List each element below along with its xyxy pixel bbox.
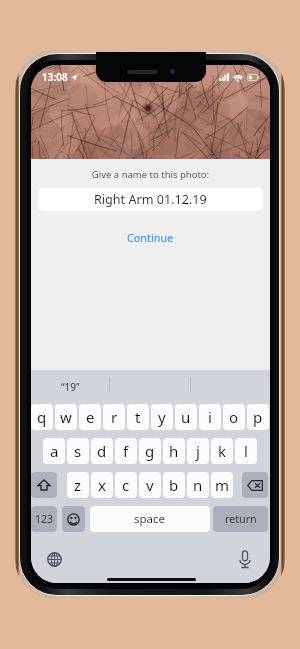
button[interactable]: Continue (31, 229, 270, 245)
button[interactable]: b (163, 472, 185, 498)
staticText: k (218, 441, 227, 461)
staticText: space (134, 511, 166, 527)
staticText: s (74, 441, 82, 461)
button[interactable]: l (235, 438, 257, 464)
staticText: u (181, 407, 191, 427)
staticText: Give a name to this photo: (31, 168, 270, 181)
button[interactable]: “19” (31, 370, 110, 404)
staticText: p (253, 407, 263, 427)
button[interactable]: z (67, 472, 89, 498)
button[interactable]: o (223, 404, 245, 430)
button[interactable]: n (187, 472, 209, 498)
staticText: g (145, 441, 155, 461)
staticText: return (225, 512, 257, 527)
button[interactable]: Shift (31, 472, 57, 498)
staticText: y (158, 407, 166, 427)
staticText: z (74, 475, 82, 495)
button[interactable]: q (31, 404, 53, 430)
button[interactable]: f (115, 438, 137, 464)
button[interactable]: c (115, 472, 137, 498)
staticText: c (122, 475, 130, 495)
button[interactable]: h (163, 438, 185, 464)
staticText: j (196, 441, 200, 461)
button[interactable]: d (91, 438, 113, 464)
staticText: 123 (35, 512, 54, 526)
button[interactable]: v (139, 472, 161, 498)
button[interactable]: Right Arm 01.12.19 (38, 188, 263, 211)
button[interactable]: r (103, 404, 125, 430)
button[interactable]: Backspace (242, 472, 268, 498)
button[interactable]: return (213, 506, 268, 532)
staticText: i (208, 407, 212, 427)
button[interactable]: Dictation (238, 550, 252, 569)
staticText: n (193, 475, 203, 495)
button[interactable]: j (187, 438, 209, 464)
button[interactable]: k (211, 438, 233, 464)
staticText: q (37, 407, 47, 427)
staticText: r (111, 407, 118, 427)
button[interactable]: g (139, 438, 161, 464)
button[interactable]: x (91, 472, 113, 498)
staticText: e (86, 407, 95, 427)
staticText: h (169, 441, 179, 461)
staticText: v (146, 475, 154, 495)
staticText: o (229, 407, 239, 427)
button[interactable]: m (211, 472, 233, 498)
staticText: d (97, 441, 107, 461)
button[interactable]: w (55, 404, 77, 430)
staticText: x (98, 475, 106, 495)
staticText: Continue (127, 230, 174, 245)
staticText: w (60, 407, 72, 427)
staticText: l (244, 441, 248, 461)
button[interactable]: e (79, 404, 101, 430)
staticText: 13:08 (42, 70, 68, 84)
button[interactable]: a (43, 438, 65, 464)
staticText: f (123, 441, 129, 461)
staticText: Right Arm 01.12.19 (94, 191, 207, 208)
staticText: b (169, 475, 179, 495)
button[interactable]: i (199, 404, 221, 430)
button[interactable]: space (90, 506, 210, 532)
button[interactable]: Emoji (62, 506, 85, 532)
button[interactable]: u (175, 404, 197, 430)
staticText: m (215, 475, 230, 495)
staticText: t (135, 407, 141, 427)
button[interactable]: 123 (31, 506, 57, 532)
button[interactable]: y (151, 404, 173, 430)
button[interactable]: s (67, 438, 89, 464)
button[interactable]: Change keyboard (47, 552, 62, 567)
button[interactable]: t (127, 404, 149, 430)
staticText: a (50, 441, 59, 461)
button[interactable]: p (247, 404, 269, 430)
staticText: “19” (61, 380, 80, 394)
